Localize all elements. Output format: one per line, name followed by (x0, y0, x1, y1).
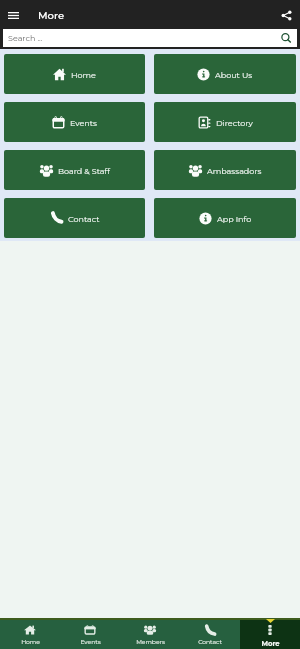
button[interactable]: App Info (154, 198, 296, 238)
button[interactable]: Board & Staff (4, 150, 145, 190)
staticText: Search ... (8, 33, 43, 43)
button[interactable]: Home (4, 54, 145, 94)
staticText: More (38, 9, 65, 21)
button[interactable]: Contact (4, 198, 145, 238)
button[interactable]: Home (0, 620, 60, 649)
staticText: Board & Staff (58, 166, 110, 176)
staticText: Events (80, 638, 101, 645)
staticText: Directory (216, 118, 253, 128)
button[interactable]: Search ... (3, 29, 297, 47)
button[interactable]: More (240, 620, 300, 649)
staticText: Events (70, 118, 97, 128)
button[interactable]: About Us (154, 54, 296, 94)
button[interactable]: Members (120, 620, 180, 649)
button[interactable]: Ambassadors (154, 150, 296, 190)
button[interactable]: Events (4, 102, 145, 142)
staticText: More (261, 639, 280, 647)
staticText: Ambassadors (207, 166, 262, 176)
button[interactable]: Open navigation menu (3, 5, 23, 25)
staticText: Contact (198, 638, 222, 645)
button[interactable]: Events (60, 620, 120, 649)
button[interactable]: Search (280, 32, 292, 44)
button[interactable]: Contact (180, 620, 240, 649)
button[interactable]: Share (276, 5, 296, 25)
staticText: Home (71, 70, 96, 80)
staticText: App Info (217, 214, 252, 224)
staticText: Contact (68, 214, 100, 224)
staticText: About Us (215, 70, 253, 80)
button[interactable]: Directory (154, 102, 296, 142)
staticText: Home (21, 638, 40, 645)
staticText: Members (136, 638, 165, 645)
